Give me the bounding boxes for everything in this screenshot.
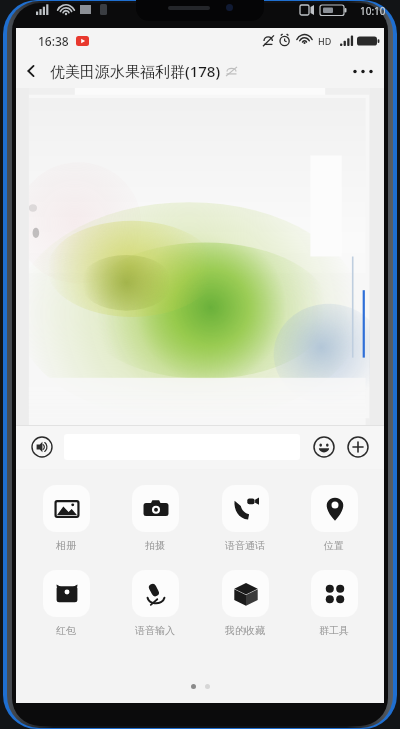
staticText: 拍摄: [145, 539, 165, 552]
staticText: 我的收藏: [225, 624, 265, 637]
button[interactable]: More options: [342, 54, 384, 88]
button[interactable]: 我的收藏: [209, 570, 281, 637]
staticText: 群工具: [319, 624, 349, 637]
button[interactable]: 拍摄: [119, 485, 191, 552]
staticText: 语音输入: [135, 624, 175, 637]
button[interactable]: 语音输入: [119, 570, 191, 637]
button[interactable]: 语音通话: [209, 485, 281, 552]
staticText: 相册: [56, 539, 76, 552]
button[interactable]: 群工具: [298, 570, 370, 637]
button[interactable]: 红包: [30, 570, 102, 637]
button[interactable]: 相册: [30, 485, 102, 552]
button[interactable]: 位置: [298, 485, 370, 552]
staticText: 位置: [324, 539, 344, 552]
staticText: 优美田源水果福利群(178): [50, 61, 221, 81]
staticText: 语音通话: [225, 539, 265, 552]
staticText: 16:38: [38, 33, 69, 49]
staticText: 10:10: [360, 4, 386, 18]
button[interactable]: 优美田源水果福利群(178): [50, 61, 237, 81]
staticText: HD: [318, 35, 332, 47]
button[interactable]: Back: [16, 54, 46, 88]
button[interactable]: Voice message: [28, 433, 56, 461]
staticText: 红包: [56, 624, 76, 637]
button[interactable]: Emoji: [310, 433, 338, 461]
button[interactable]: More functions: [344, 433, 372, 461]
